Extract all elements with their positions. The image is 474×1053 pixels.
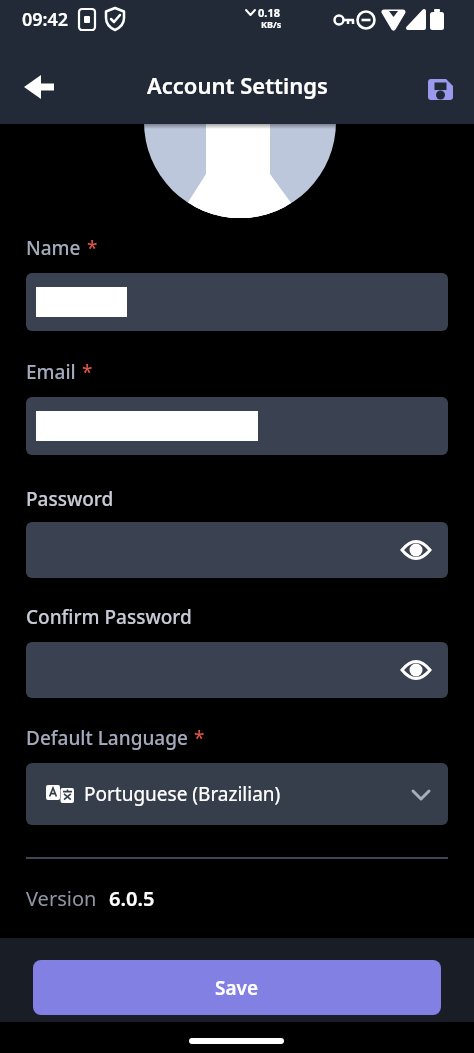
button[interactable]: Portuguese (Brazilian)	[26, 763, 448, 825]
staticText: Default Language	[26, 725, 188, 751]
staticText: Save	[215, 975, 259, 1001]
staticText: 6.0.5	[109, 885, 155, 912]
button[interactable]	[26, 397, 448, 455]
staticText: Version	[26, 885, 97, 912]
staticText: Account Settings	[147, 70, 328, 100]
staticText: 0.18	[258, 5, 280, 20]
button[interactable]: Save	[33, 960, 441, 1015]
button[interactable]	[26, 522, 448, 578]
staticText: Email	[26, 359, 76, 385]
button[interactable]	[26, 273, 448, 331]
staticText: Password	[26, 486, 114, 512]
button[interactable]	[398, 655, 434, 685]
button[interactable]	[14, 62, 64, 112]
button[interactable]	[398, 535, 434, 565]
staticText: *	[82, 359, 93, 385]
staticText: KB/s	[261, 18, 282, 30]
staticText: *	[87, 235, 98, 261]
staticText: 09:42	[22, 7, 69, 32]
button[interactable]	[26, 642, 448, 698]
staticText: Confirm Password	[26, 604, 192, 630]
staticText: Name	[26, 235, 81, 261]
button[interactable]	[416, 62, 466, 112]
staticText: Portuguese (Brazilian)	[84, 781, 281, 807]
staticText: *	[194, 725, 205, 751]
